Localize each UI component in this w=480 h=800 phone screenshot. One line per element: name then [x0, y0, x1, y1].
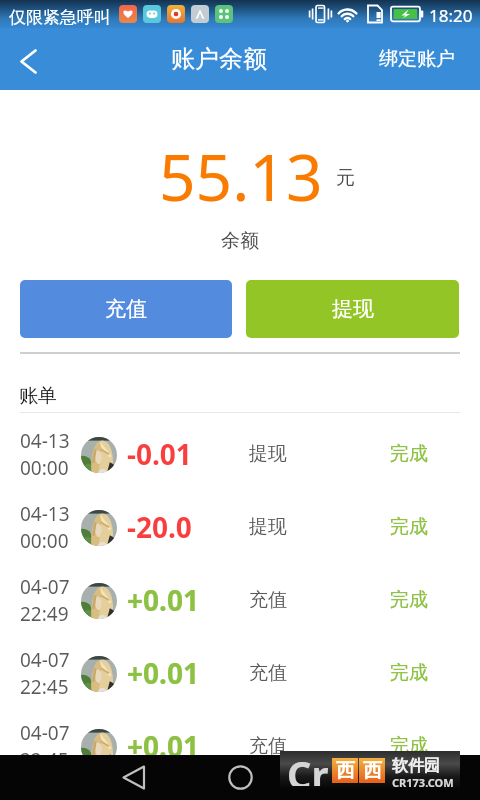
staticText: 完成	[390, 734, 428, 758]
staticText: 18:20	[429, 4, 473, 27]
button[interactable]: 提现	[246, 280, 459, 338]
staticText: 22:45	[20, 747, 69, 773]
staticText: 完成	[390, 588, 428, 612]
staticText: 04-07	[20, 720, 70, 746]
staticText: 提现	[249, 442, 287, 466]
button[interactable]: 04-07	[0, 632, 480, 705]
staticText: +0.01	[127, 654, 199, 692]
staticText: 余额	[221, 229, 259, 253]
staticText: 充值	[249, 734, 287, 758]
staticText: 账单	[19, 384, 57, 408]
button[interactable]: Back	[98, 755, 168, 800]
staticText: 充值	[249, 661, 287, 685]
staticText: 充值	[249, 588, 287, 612]
button[interactable]: 04-07	[0, 705, 480, 778]
staticText: -20.0	[127, 508, 192, 546]
staticText: 22:45	[20, 674, 69, 700]
staticText: -0.01	[127, 435, 192, 473]
staticText: 提现	[249, 515, 287, 539]
staticText: 提现	[332, 296, 374, 322]
button[interactable]: 04-13	[0, 413, 480, 486]
staticText: 22:49	[20, 601, 69, 627]
button[interactable]: Back	[0, 28, 54, 90]
staticText: 00:00	[20, 455, 69, 481]
button[interactable]: Home	[205, 755, 275, 800]
button[interactable]: 绑定账户	[357, 28, 480, 90]
staticText: 软件园	[392, 756, 440, 776]
staticText: 04-13	[20, 428, 70, 454]
staticText: 元	[336, 166, 355, 190]
staticText: 账户余额	[171, 44, 267, 74]
staticText: Cr	[287, 748, 329, 786]
staticText: 04-07	[20, 574, 70, 600]
staticText: 西	[336, 759, 355, 783]
staticText: 西	[363, 759, 382, 783]
staticText: 55.13	[159, 133, 323, 220]
staticText: 04-13	[20, 501, 70, 527]
staticText: 00:00	[20, 528, 69, 554]
staticText: 完成	[390, 661, 428, 685]
staticText: +0.01	[127, 581, 199, 619]
staticText: 完成	[390, 515, 428, 539]
staticText: 仅限紧急呼叫	[9, 7, 111, 28]
staticText: CR173.COM	[392, 775, 454, 790]
staticText: 04-07	[20, 647, 70, 673]
staticText: 完成	[390, 442, 428, 466]
staticText: 绑定账户	[379, 47, 455, 71]
button[interactable]: 04-07	[0, 559, 480, 632]
button[interactable]: 04-13	[0, 486, 480, 559]
staticText: +0.01	[127, 727, 199, 765]
button[interactable]: 充值	[20, 280, 232, 338]
staticText: 充值	[105, 296, 147, 322]
